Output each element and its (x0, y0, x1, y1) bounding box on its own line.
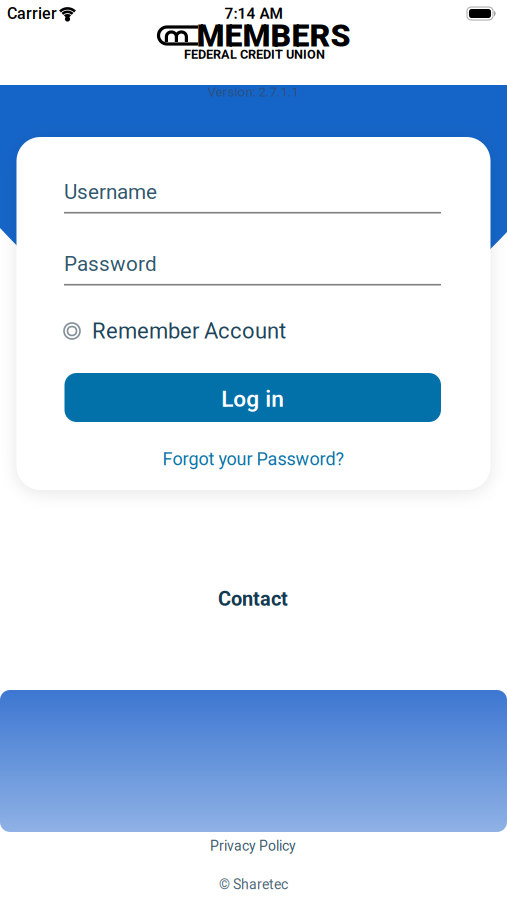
staticText: Log in (221, 386, 284, 412)
button[interactable]: Username (64, 178, 441, 220)
staticText: Version: 2.7.1.1 (207, 84, 298, 100)
staticText: Carrier (7, 4, 57, 23)
staticText: Remember Account (92, 318, 286, 344)
button[interactable]: Forgot your Password? (162, 448, 344, 470)
staticText: Privacy Policy (210, 838, 296, 854)
staticText: 7:14 AM (224, 4, 282, 22)
staticText: Username (64, 180, 157, 204)
staticText: MEMBERS (196, 17, 350, 54)
button[interactable]: Log in (64, 373, 441, 422)
staticText: Contact (218, 587, 288, 611)
staticText: Password (64, 252, 157, 276)
staticText: © Sharetec (219, 876, 288, 893)
button[interactable]: Privacy Policy (210, 838, 296, 854)
staticText: FEDERAL CREDIT UNION (184, 47, 325, 62)
staticText: Forgot your Password? (162, 448, 344, 470)
button[interactable]: Remember Account (64, 317, 441, 345)
button[interactable]: Contact (218, 587, 288, 611)
button[interactable]: Password (64, 250, 441, 292)
